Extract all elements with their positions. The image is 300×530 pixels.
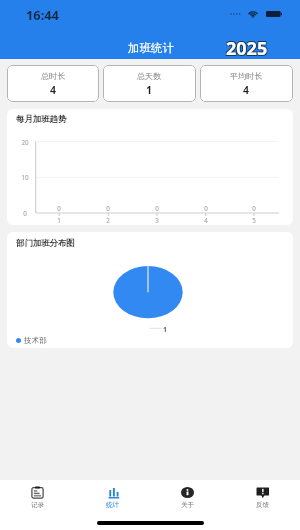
staticText: 2025 (227, 37, 269, 62)
button[interactable]: 反馈 (225, 480, 300, 518)
staticText: 0 (106, 204, 110, 212)
staticText: 统计 (106, 501, 120, 509)
staticText: 2025 (227, 35, 269, 60)
staticText: 部门加班分布图 (16, 238, 75, 249)
staticText: 4 (243, 83, 250, 97)
button[interactable]: 平均时长 (200, 65, 293, 102)
staticText: 2 (106, 216, 110, 224)
staticText: 加班统计 (128, 41, 174, 55)
staticText: 记录 (31, 501, 45, 509)
staticText: 0 (57, 204, 61, 212)
staticText: 关于 (181, 501, 195, 509)
staticText: 每月加班趋势 (16, 114, 67, 125)
staticText: 1 (57, 216, 61, 224)
staticText: 技术部 (24, 336, 47, 345)
button[interactable]: 统计 (75, 480, 150, 518)
button[interactable]: 关于 (150, 480, 225, 518)
staticText: 20 (21, 138, 29, 146)
button[interactable]: 总天数 (103, 65, 196, 102)
staticText: 2025 (225, 37, 267, 62)
staticText: 2025 (226, 36, 268, 61)
button[interactable]: 总时长 (7, 65, 99, 102)
staticText: 1 (163, 325, 167, 334)
staticText: 4 (50, 83, 57, 97)
staticText: 5 (252, 216, 256, 224)
staticText: 10 (21, 173, 29, 181)
staticText: 平均时长 (230, 71, 263, 81)
staticText: 总时长 (41, 71, 66, 81)
staticText: 0 (204, 204, 208, 212)
staticText: 1 (146, 83, 153, 97)
staticText: 0 (23, 209, 27, 217)
staticText: 16:44 (26, 6, 59, 23)
staticText: 0 (252, 204, 256, 212)
staticText: 总天数 (137, 71, 162, 81)
staticText: 0 (155, 204, 159, 212)
staticText: 2025 (225, 35, 267, 60)
staticText: 3 (155, 216, 159, 224)
staticText: 反馈 (256, 501, 270, 509)
button[interactable]: 记录 (0, 480, 75, 518)
staticText: 4 (204, 216, 208, 224)
